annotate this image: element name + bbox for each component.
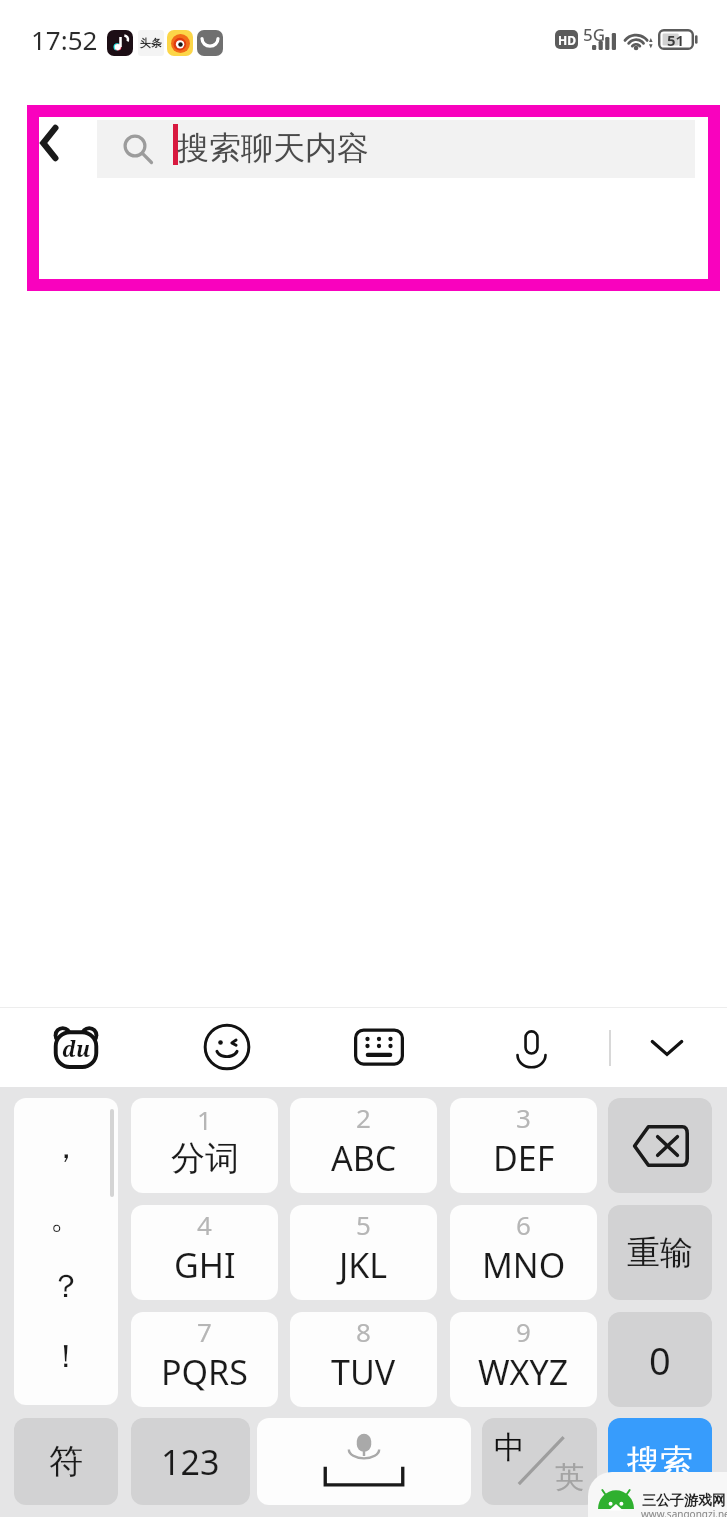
staticText: 5	[356, 1207, 371, 1242]
staticText: 123	[161, 1439, 220, 1485]
button[interactable]: 3	[450, 1098, 597, 1193]
staticText: PQRS	[161, 1349, 248, 1395]
staticText: 英	[555, 1459, 584, 1496]
staticText: www.sangongzi.net	[641, 1507, 727, 1517]
staticText: 分词	[171, 1137, 239, 1180]
staticText: 7	[197, 1314, 212, 1349]
button[interactable]: 搜索	[608, 1418, 712, 1505]
button[interactable]: 中	[482, 1418, 597, 1505]
button[interactable]	[257, 1418, 471, 1505]
staticText: 4	[197, 1207, 212, 1242]
staticText: GHI	[174, 1242, 236, 1288]
staticText: 9	[516, 1314, 531, 1349]
staticText: 搜索聊天内容	[177, 128, 369, 168]
button[interactable]: Keyboard layout	[347, 1007, 411, 1087]
staticText: ABC	[331, 1135, 397, 1181]
staticText: 3	[516, 1100, 531, 1135]
staticText: 17:52	[31, 22, 98, 57]
staticText: du	[62, 1035, 91, 1064]
button[interactable]: 重输	[608, 1205, 712, 1300]
staticText: ？	[50, 1266, 82, 1306]
staticText: 三公子游戏网	[642, 1492, 726, 1510]
staticText: 搜索	[627, 1441, 693, 1483]
staticText: DEF	[493, 1135, 555, 1181]
staticText: 重输	[627, 1232, 693, 1274]
button[interactable]: 5	[290, 1205, 437, 1300]
staticText: 5G	[583, 23, 606, 46]
button[interactable]: 123	[131, 1418, 250, 1505]
staticText: 2	[356, 1100, 371, 1135]
staticText: HD	[558, 32, 576, 48]
staticText: 51	[667, 30, 685, 50]
staticText: 1	[197, 1102, 212, 1137]
button[interactable]: 4	[131, 1205, 278, 1300]
button[interactable]: 1	[131, 1098, 278, 1193]
staticText: WXYZ	[478, 1349, 569, 1395]
staticText: 头条	[140, 36, 162, 50]
staticText: TUV	[331, 1349, 396, 1395]
staticText: ，	[50, 1127, 82, 1167]
button[interactable]: Hide keyboard	[635, 1007, 699, 1087]
staticText: 8	[356, 1314, 371, 1349]
button[interactable]: 6	[450, 1205, 597, 1300]
staticText: ！	[50, 1336, 82, 1376]
staticText: 。	[50, 1197, 82, 1237]
button[interactable]: 2	[290, 1098, 437, 1193]
staticText: 符	[49, 1440, 83, 1483]
staticText: JKL	[339, 1242, 388, 1288]
staticText: 中	[494, 1428, 525, 1467]
button[interactable]: Voice input	[499, 1007, 563, 1087]
button[interactable]	[608, 1098, 712, 1193]
button[interactable]: Emoji	[195, 1007, 259, 1087]
staticText: 0	[649, 1334, 671, 1386]
button[interactable]: 9	[450, 1312, 597, 1407]
staticText: 6	[516, 1207, 531, 1242]
button[interactable]: Baidu input	[44, 1007, 108, 1087]
button[interactable]: 符	[14, 1418, 118, 1505]
button[interactable]: 8	[290, 1312, 437, 1407]
button[interactable]: 0	[608, 1312, 712, 1407]
button[interactable]: Search chat content	[97, 120, 695, 178]
button[interactable]: 7	[131, 1312, 278, 1407]
staticText: MNO	[482, 1242, 566, 1288]
button[interactable]: Back	[28, 110, 92, 176]
button[interactable]: ，	[14, 1098, 118, 1405]
